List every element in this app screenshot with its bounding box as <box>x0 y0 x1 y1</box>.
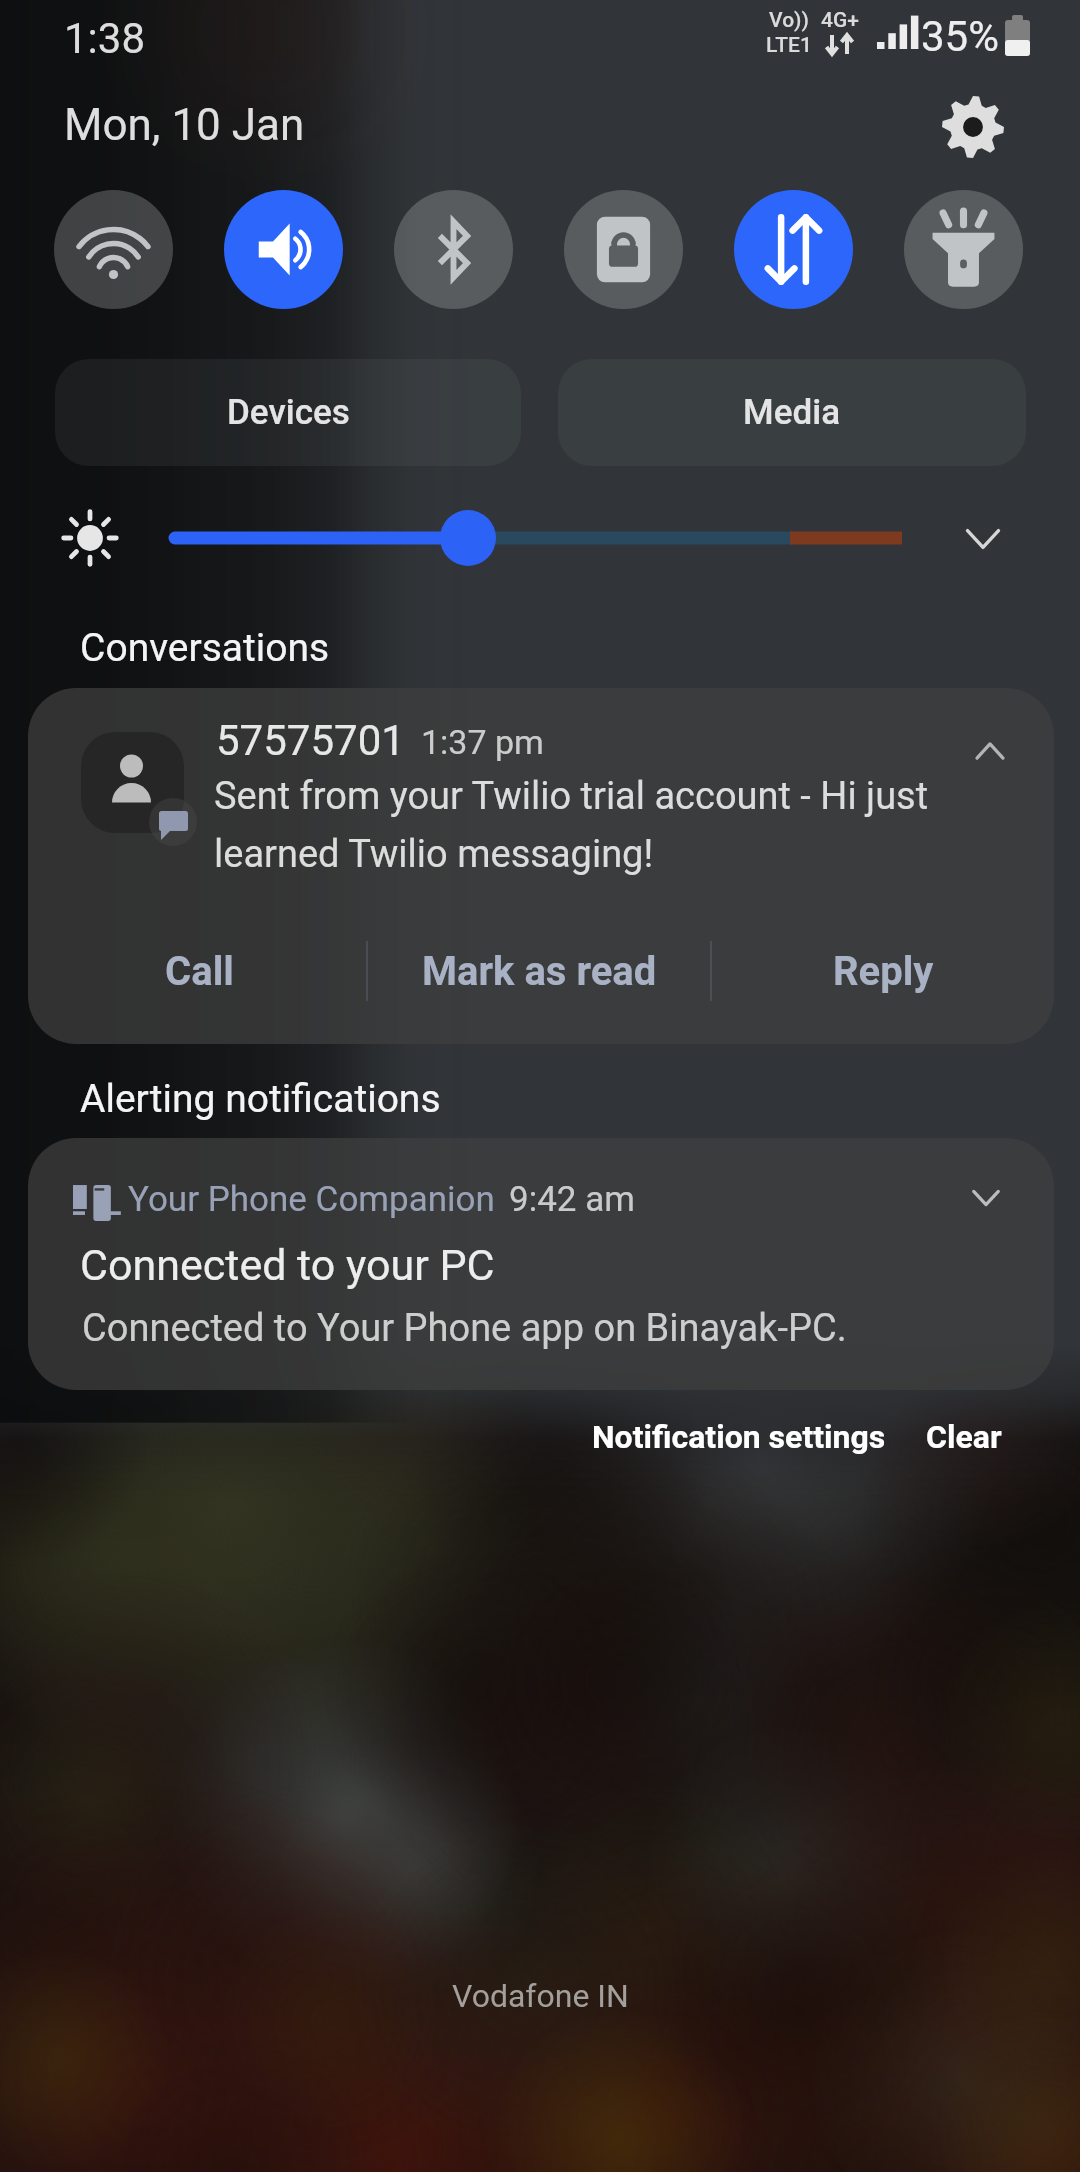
staticText: Your Phone Companion <box>128 1179 495 1220</box>
button[interactable]: Call <box>61 921 337 1021</box>
button[interactable]: Notification settings <box>578 1406 900 1468</box>
button[interactable]: Sound <box>224 190 343 309</box>
staticText: Reply <box>833 948 934 995</box>
staticText: Notification settings <box>592 1418 886 1456</box>
staticText: Clear <box>926 1418 1002 1456</box>
staticText: Vo)) <box>769 8 809 33</box>
button[interactable]: Bluetooth <box>394 190 513 309</box>
staticText: Mon, 10 Jan <box>64 99 305 151</box>
staticText: 1:38 <box>64 14 145 63</box>
staticText: Conversations <box>80 625 330 671</box>
staticText: Connected to Your Phone app on Binayak-P… <box>82 1306 847 1351</box>
staticText: 35% <box>921 12 999 61</box>
button[interactable]: Auto rotate <box>564 190 683 309</box>
button[interactable]: Expand quick settings <box>950 506 1016 572</box>
staticText: Vodafone IN <box>452 1977 629 2015</box>
button[interactable]: Expand notification <box>948 1160 1024 1236</box>
button[interactable]: Mobile data <box>734 190 853 309</box>
button[interactable]: Reply <box>740 921 1026 1021</box>
staticText: Sent from your Twilio trial account - Hi… <box>214 774 974 876</box>
staticText: Media <box>743 392 841 433</box>
button[interactable]: Clear <box>912 1406 1016 1468</box>
staticText: Connected to your PC <box>80 1240 495 1290</box>
button[interactable]: Collapse notification <box>955 716 1025 786</box>
staticText: Mark as read <box>422 948 657 995</box>
button[interactable]: Flashlight <box>904 190 1023 309</box>
staticText: 4G+ <box>821 8 859 33</box>
button[interactable]: Settings <box>938 92 1008 162</box>
button[interactable]: Wi-Fi <box>54 190 173 309</box>
staticText: 9:42 am <box>509 1179 635 1220</box>
staticText: Alerting notifications <box>80 1076 441 1122</box>
button[interactable]: Devices <box>55 359 521 466</box>
button[interactable]: Media <box>558 359 1026 466</box>
staticText: 57575701 <box>216 716 405 765</box>
staticText: 1:37 pm <box>421 722 544 762</box>
staticText: LTE1 <box>766 33 812 58</box>
button[interactable]: Your Phone Companion <box>28 1138 1054 1390</box>
staticText: Call <box>165 948 234 995</box>
button[interactable]: Mark as read <box>396 921 683 1021</box>
staticText: Devices <box>227 392 350 433</box>
button[interactable]: 57575701 <box>28 688 1054 1044</box>
